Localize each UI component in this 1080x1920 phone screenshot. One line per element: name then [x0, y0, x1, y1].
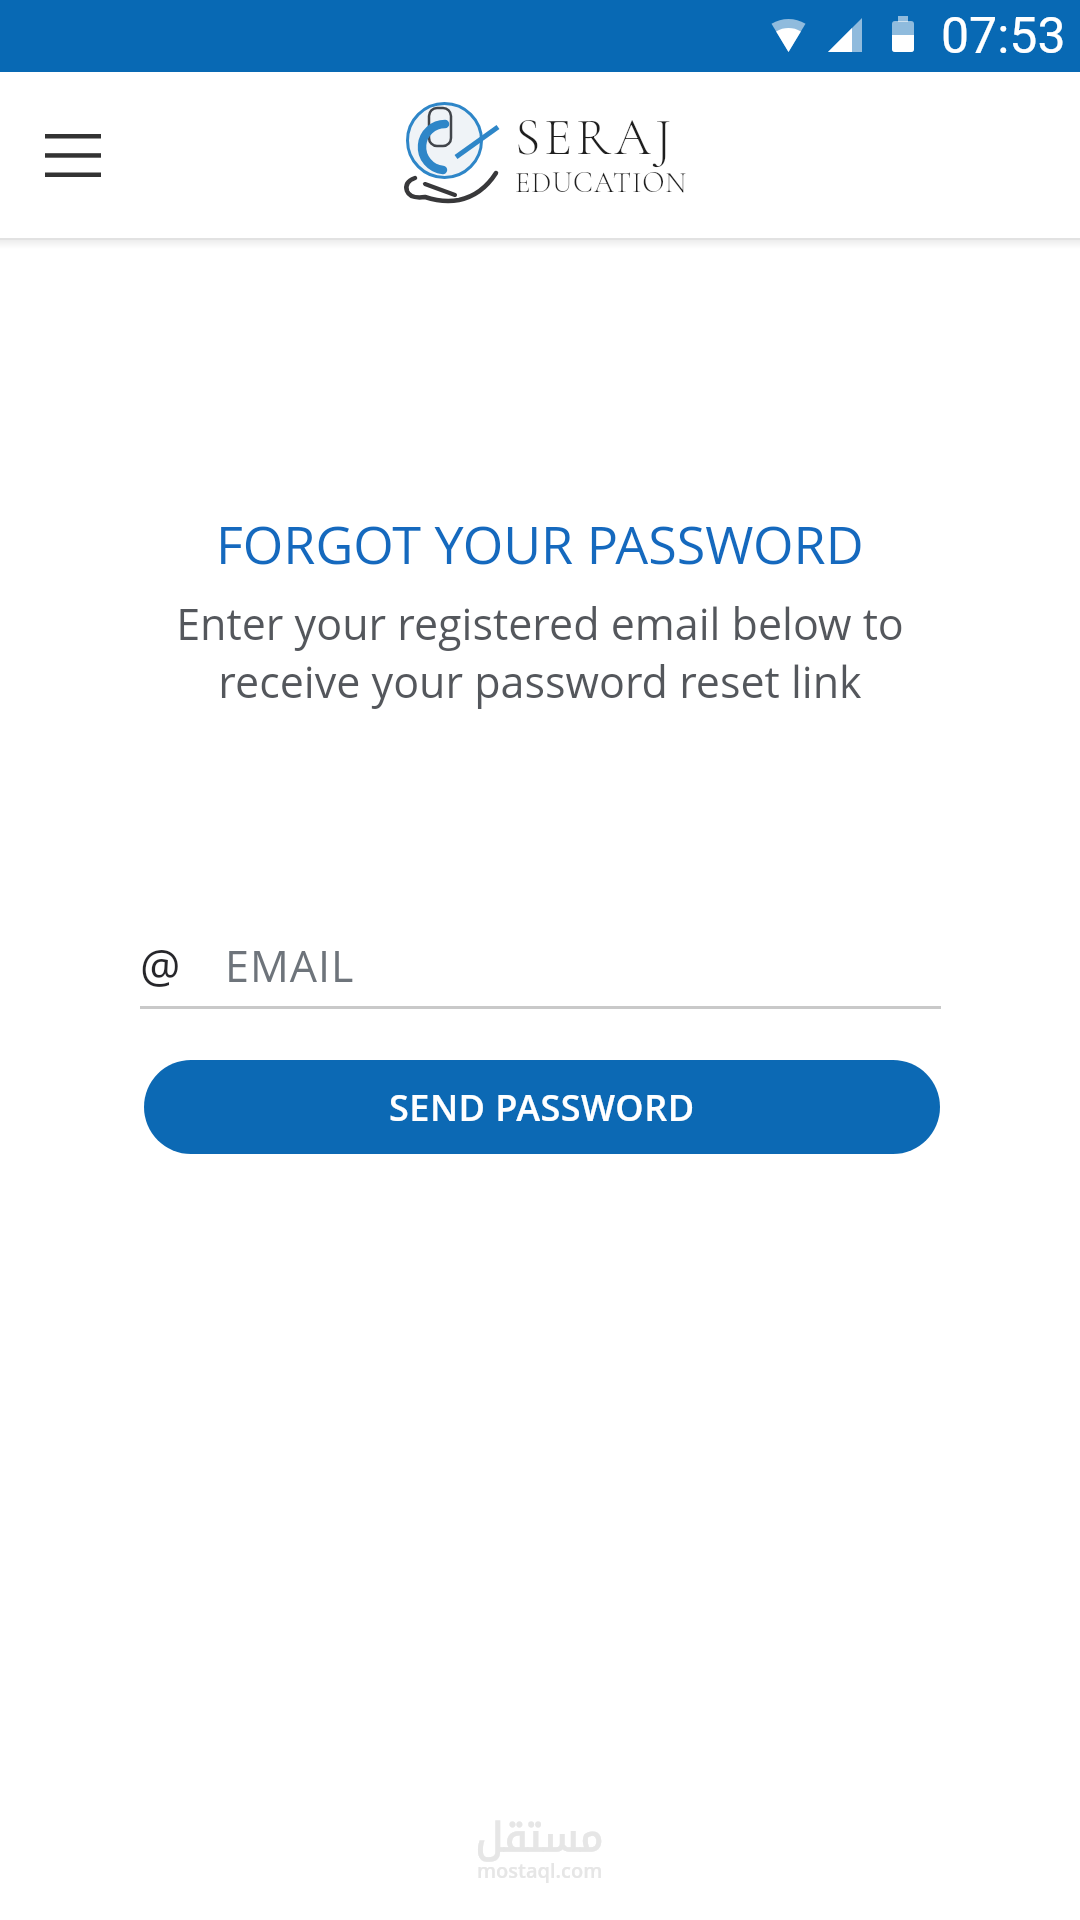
staticText: EDUCATION	[515, 165, 688, 200]
staticText: مستقل	[476, 1800, 604, 1876]
staticText: SEND PASSWORD	[389, 1083, 695, 1132]
button[interactable]: SEND PASSWORD	[144, 1060, 940, 1154]
staticText: Enter your registered email below to rec…	[176, 594, 904, 710]
staticText: 07:53	[941, 7, 1066, 66]
staticText: FORGOT YOUR PASSWORD	[216, 508, 864, 579]
staticText: EMAIL	[225, 936, 355, 995]
button[interactable]: @	[140, 925, 940, 1005]
staticText: SERAJ	[515, 106, 676, 169]
button[interactable]	[24, 110, 122, 200]
staticText: @	[140, 935, 181, 996]
staticText: mostaql.com	[477, 1857, 603, 1884]
